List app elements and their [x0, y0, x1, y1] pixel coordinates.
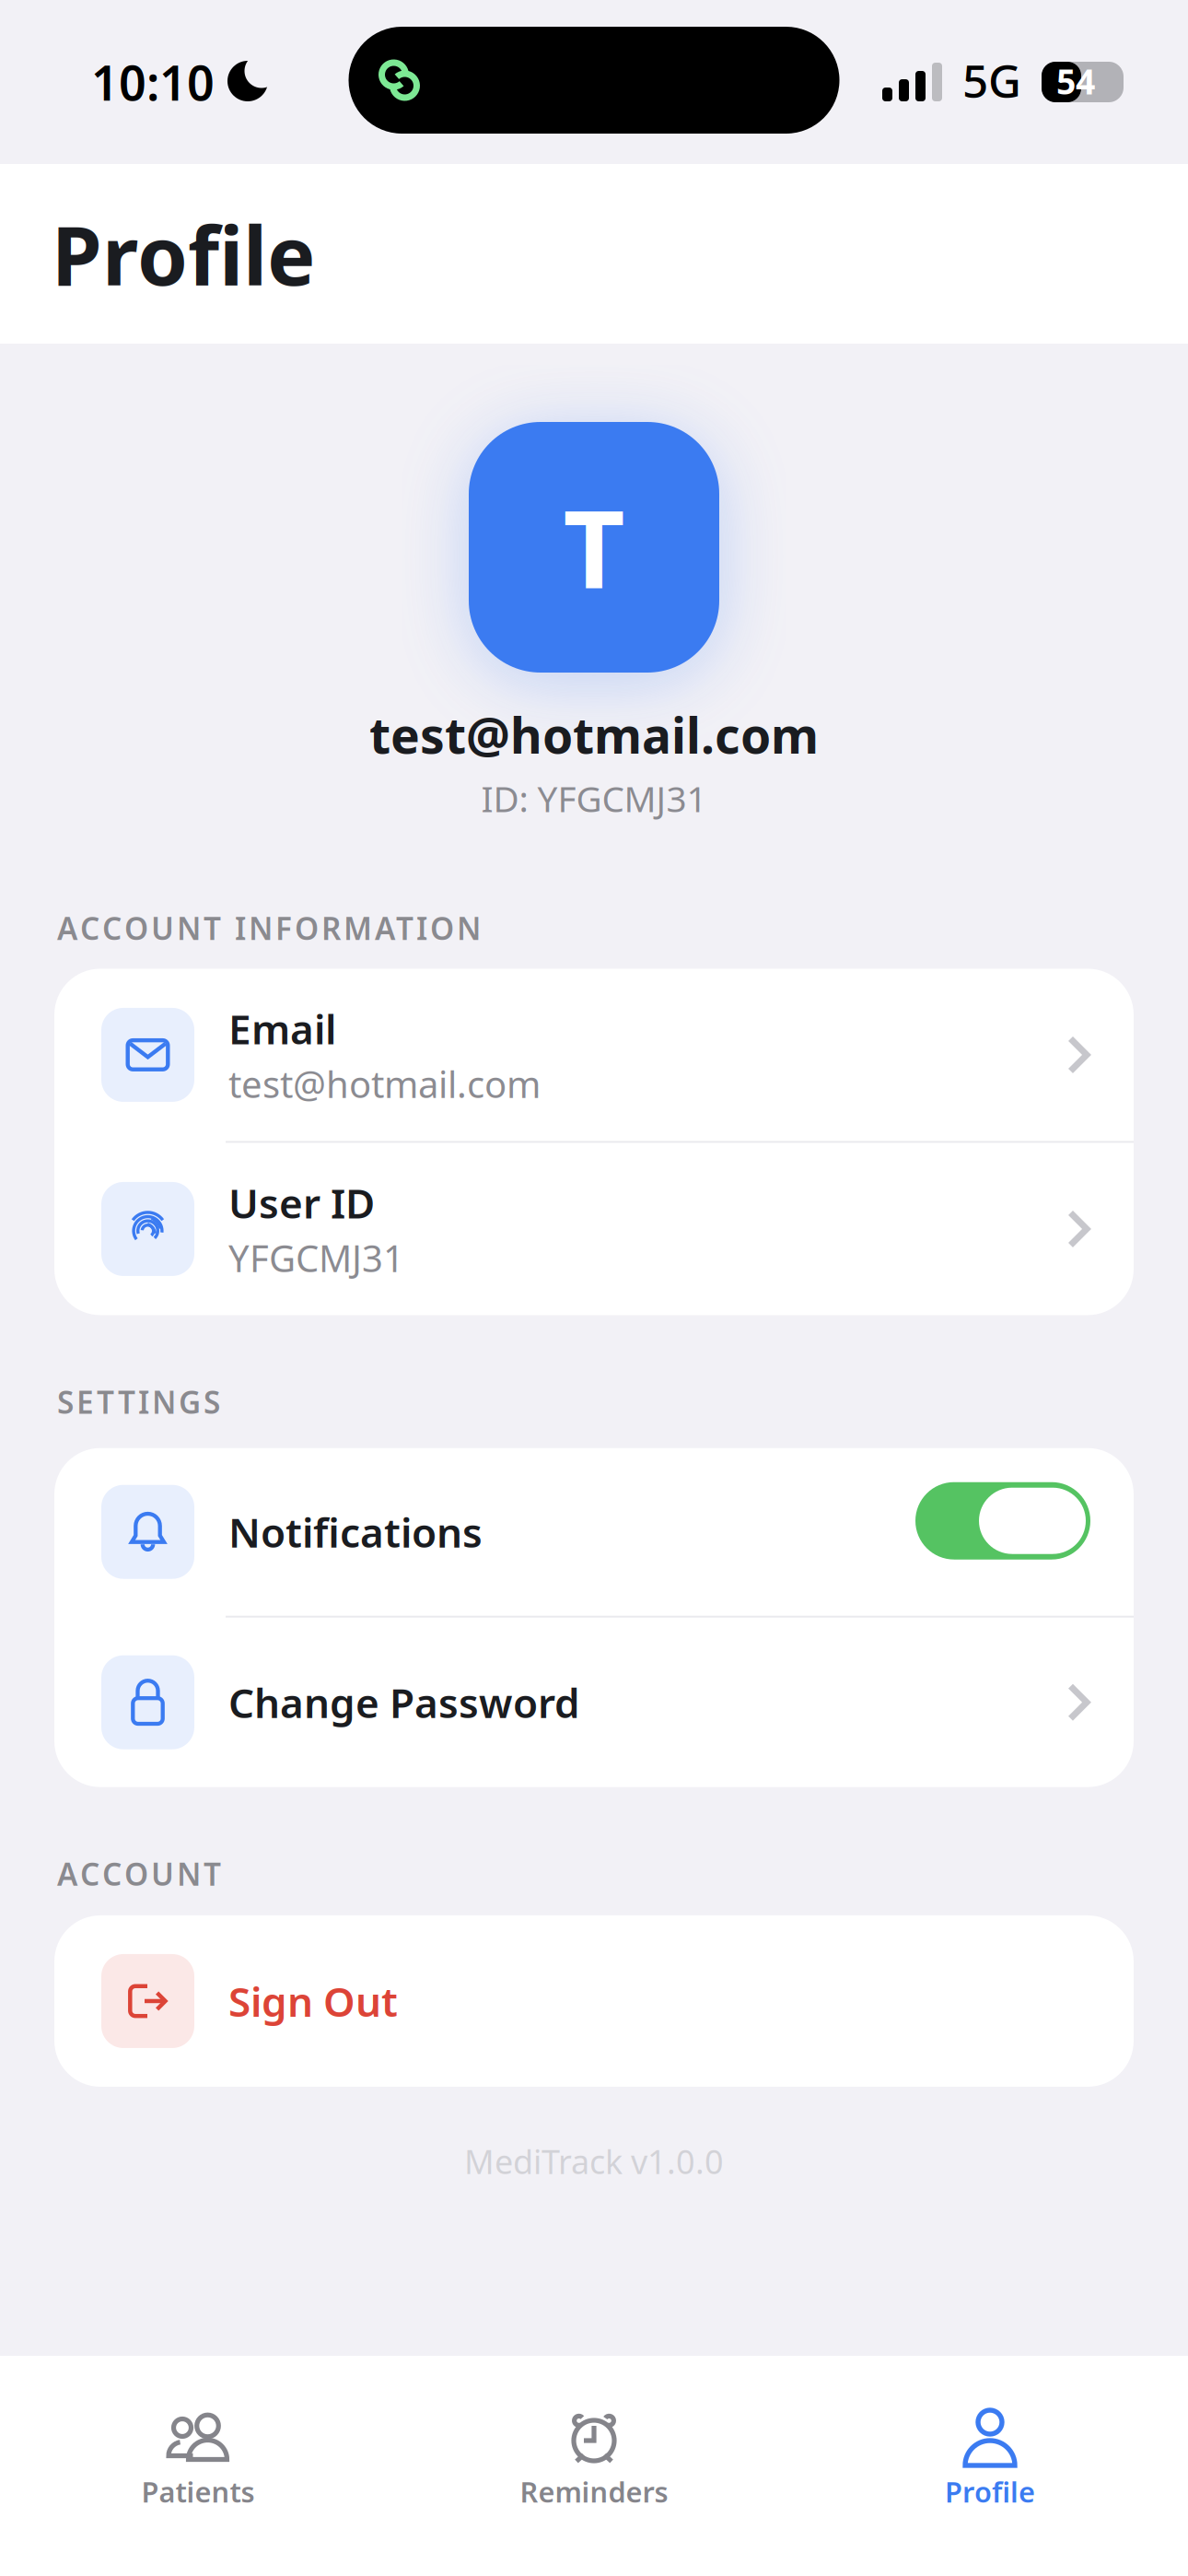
button[interactable]: Patients [0, 2356, 396, 2576]
staticText: YFGCMJ31 [228, 1233, 404, 1282]
button[interactable]: Change Password [54, 1618, 1134, 1787]
staticText: test@hotmail.com [228, 1059, 541, 1108]
staticText: T [563, 476, 625, 618]
button[interactable]: Email [54, 969, 1134, 1141]
button[interactable]: Sign Out [54, 1915, 1134, 2087]
button[interactable]: Notifications [54, 1448, 1134, 1616]
button[interactable]: Reminders [396, 2356, 792, 2576]
staticText: User ID [228, 1176, 375, 1230]
button[interactable]: Profile [792, 2356, 1188, 2576]
staticText: MediTrack v1.0.0 [464, 2139, 724, 2183]
staticText: 10:10 [91, 50, 215, 114]
staticText: SETTINGS [57, 1381, 220, 1422]
staticText: Profile [945, 2473, 1035, 2510]
staticText: ID: YFGCMJ31 [481, 775, 707, 822]
staticText: Email [228, 1002, 336, 1055]
staticText: 5G [962, 50, 1021, 110]
staticText: test@hotmail.com [369, 702, 819, 767]
button[interactable]: User ID [54, 1143, 1134, 1315]
staticText: ACCOUNT [57, 1853, 221, 1894]
staticText: ACCOUNT INFORMATION [57, 908, 481, 948]
staticText: Sign Out [228, 1974, 398, 2028]
staticText: Patients [141, 2473, 255, 2510]
staticText: Profile [52, 200, 316, 308]
staticText: Reminders [520, 2473, 668, 2510]
staticText: 54 [1056, 58, 1095, 104]
staticText: Notifications [228, 1505, 483, 1559]
staticText: Change Password [228, 1675, 580, 1729]
